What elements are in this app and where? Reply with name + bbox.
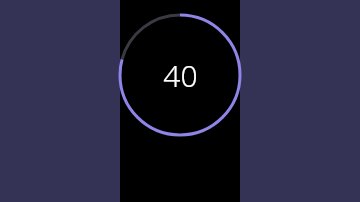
button[interactable]: Timer progress 40 [120,12,240,138]
staticText: 40 [163,55,198,96]
